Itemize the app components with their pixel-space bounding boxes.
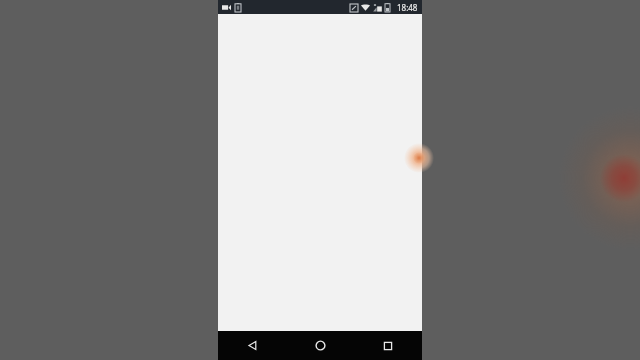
button[interactable]: Home — [286, 331, 354, 360]
staticText: 18:48 — [397, 2, 418, 13]
button[interactable]: Back — [218, 331, 286, 360]
button[interactable]: Recent apps — [354, 331, 422, 360]
